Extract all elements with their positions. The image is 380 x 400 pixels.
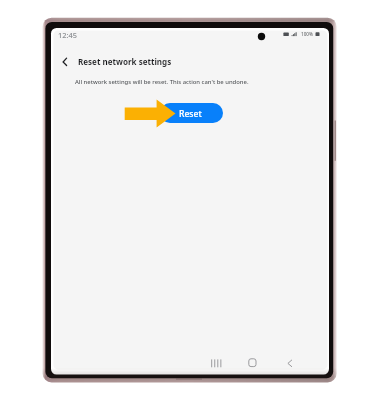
staticText: All network settings will be reset. This… [75, 78, 249, 86]
staticText: 12:45 [58, 30, 77, 40]
button[interactable]: Home [241, 352, 265, 374]
button[interactable]: Back [280, 352, 302, 374]
button[interactable]: Reset [160, 103, 223, 123]
staticText: 100% [301, 31, 313, 37]
staticText: Reset [179, 108, 202, 120]
button[interactable]: Recent apps [205, 352, 229, 374]
staticText: Reset network settings [78, 56, 172, 67]
button[interactable]: Back [56, 51, 74, 73]
